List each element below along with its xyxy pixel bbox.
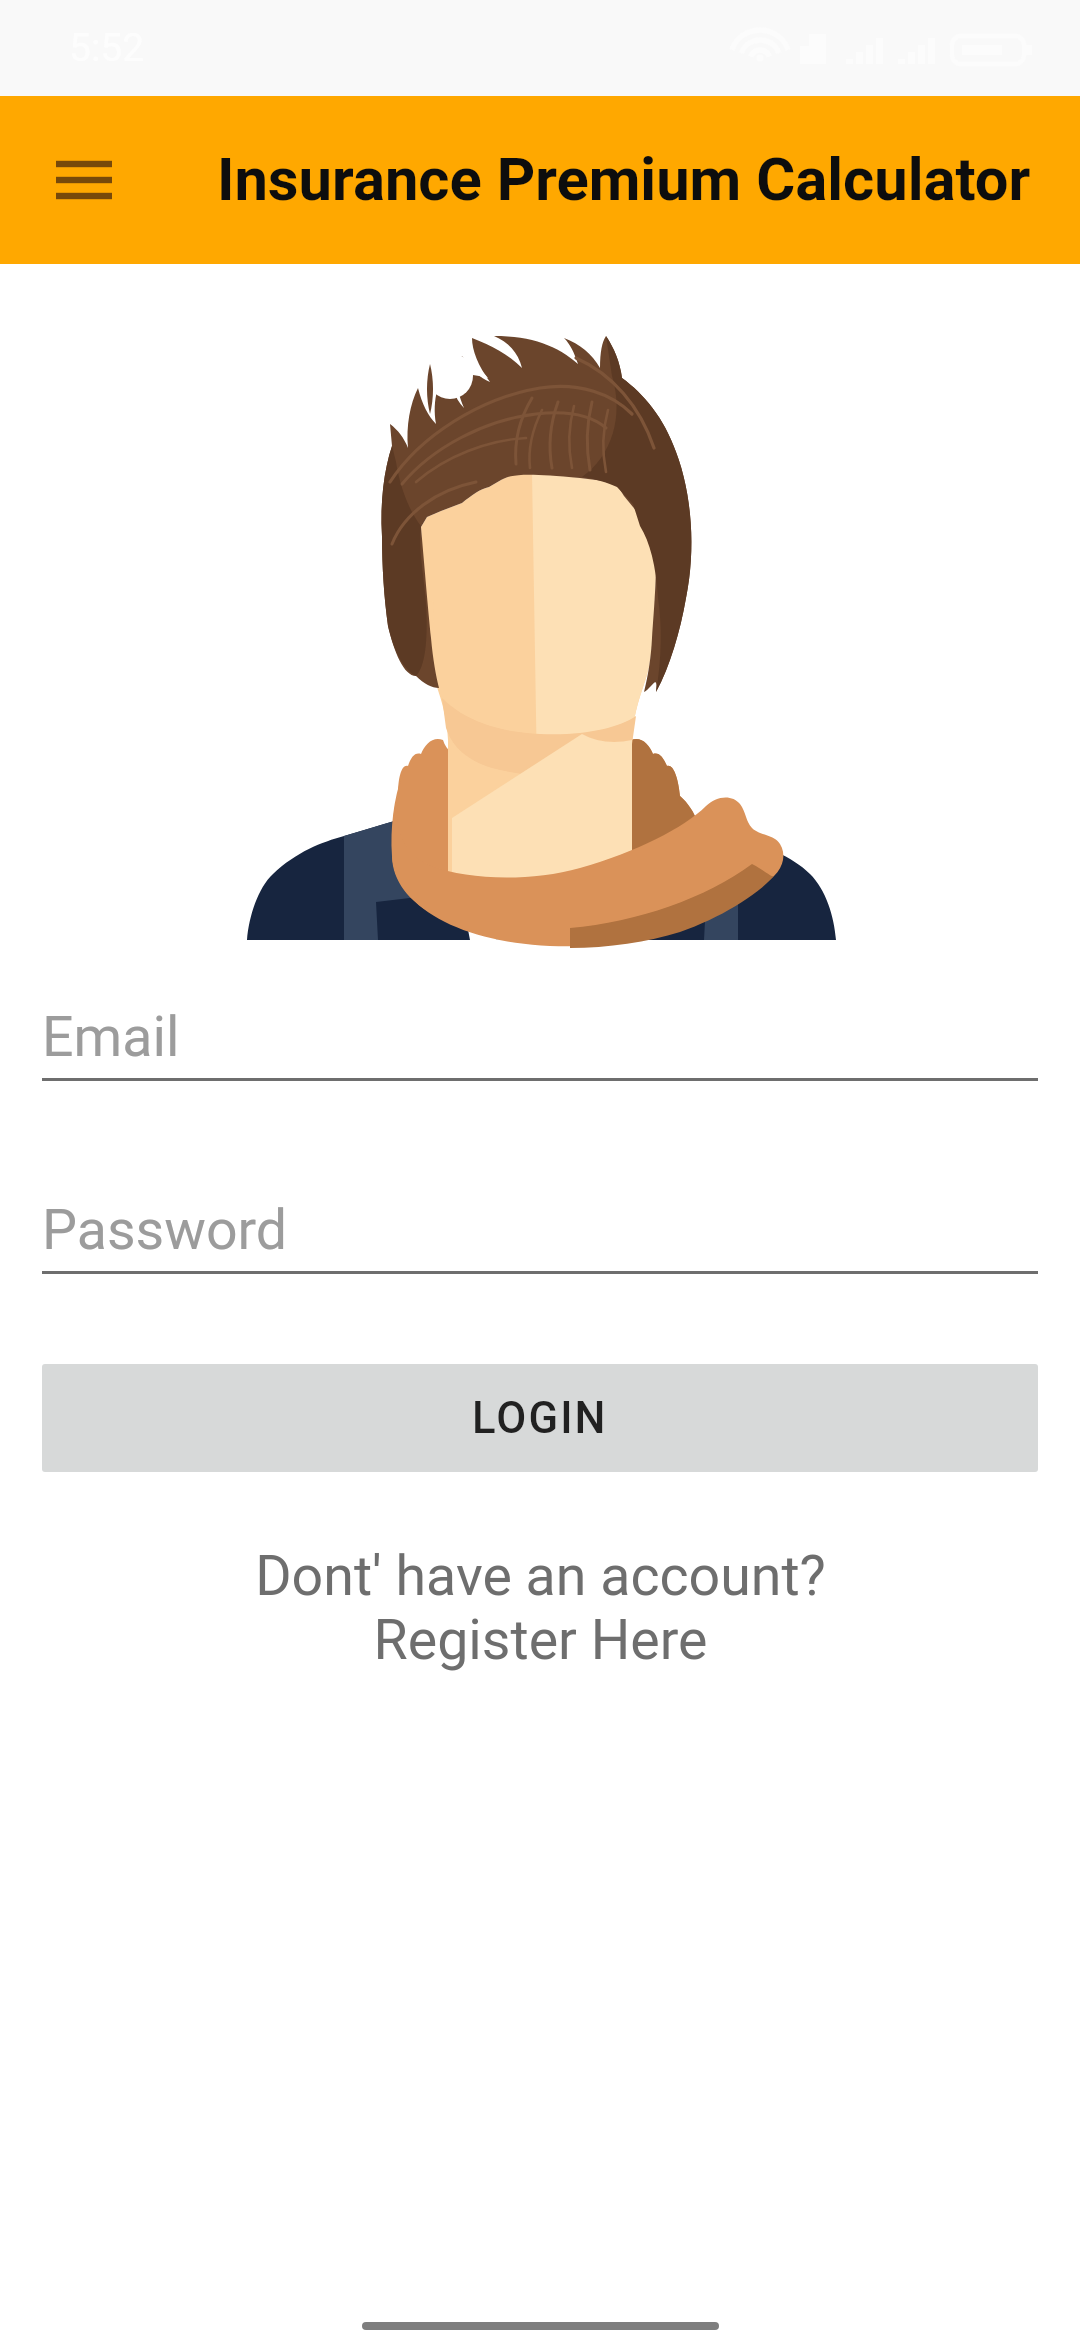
staticText: Email bbox=[42, 1005, 180, 1070]
button[interactable]: Open navigation drawer bbox=[18, 96, 156, 264]
button[interactable]: Dont' have an account? Register Here bbox=[0, 1544, 1080, 1672]
staticText: Dont' have an account? Register Here bbox=[255, 1544, 826, 1672]
staticText: LOGIN bbox=[472, 1393, 608, 1444]
staticText: Password bbox=[42, 1198, 288, 1263]
button[interactable]: LOGIN bbox=[42, 1364, 1038, 1472]
staticText: Insurance Premium Calculator bbox=[217, 145, 1031, 215]
